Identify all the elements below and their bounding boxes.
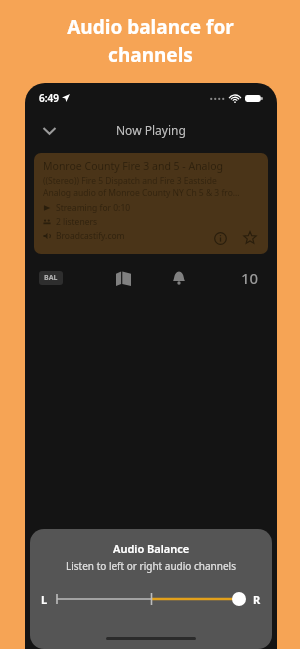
staticText: Listen to left or right audio channels [66, 559, 236, 573]
staticText: Monroe County Fire 3 and 5 - Analog [43, 159, 224, 173]
staticText: 10 [241, 268, 259, 288]
staticText: L [41, 592, 48, 607]
staticText: ((Stereo)) Fire 5 Dispatch and Fire 3 Ea… [43, 175, 217, 187]
staticText: Broadcastify.com [56, 230, 125, 242]
button[interactable]: Balance slider [55, 587, 246, 611]
button[interactable]: BAL [39, 271, 63, 285]
staticText: channels [108, 42, 193, 68]
staticText: Now Playing [116, 122, 186, 138]
button[interactable]: Favorite [240, 228, 260, 248]
staticText: Audio balance for [67, 14, 234, 40]
staticText: Analog audio of Monroe County NY Ch 5 & … [43, 187, 240, 199]
button[interactable]: Monroe County Fire 3 and 5 - Analog [34, 153, 268, 254]
button[interactable]: Alerts [151, 262, 207, 294]
staticText: 2 listeners [56, 216, 98, 228]
staticText: Streaming for 0:10 [56, 202, 131, 214]
button[interactable]: Info [210, 228, 230, 248]
button[interactable]: 10 [237, 268, 263, 288]
button[interactable]: Map [95, 262, 151, 294]
staticText: Audio Balance [113, 541, 190, 556]
staticText: R [253, 592, 261, 607]
button[interactable]: Collapse [33, 114, 65, 146]
staticText: 6:49 [39, 91, 59, 105]
staticText: BAL [44, 273, 58, 283]
